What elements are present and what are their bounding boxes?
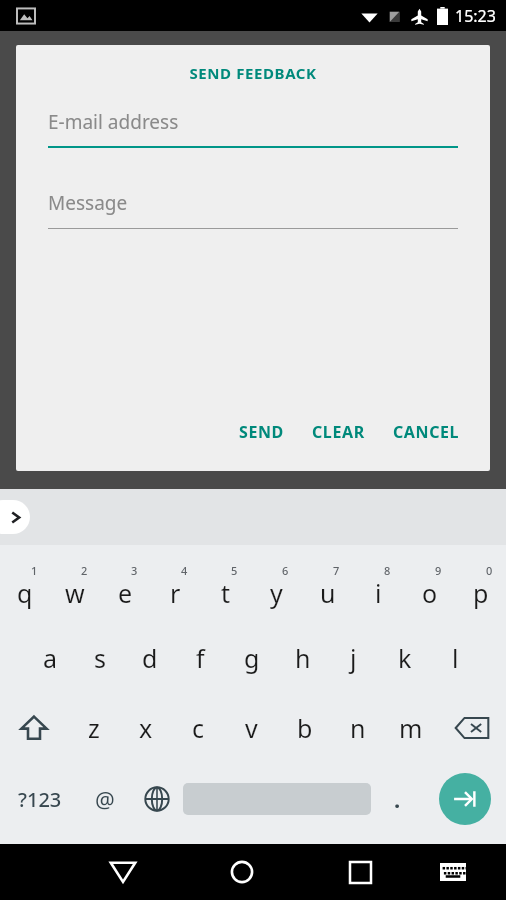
button[interactable]: b <box>278 693 331 763</box>
button[interactable]: v <box>225 693 278 763</box>
staticText: l <box>452 641 459 675</box>
button[interactable]: z <box>68 693 120 763</box>
staticText: @ <box>95 784 115 814</box>
button[interactable]: 9 <box>404 551 455 623</box>
button[interactable]: Change language <box>131 763 183 835</box>
staticText: 0 <box>486 563 493 578</box>
button[interactable]: h <box>277 623 328 693</box>
staticText: f <box>196 641 205 675</box>
staticText: p <box>473 576 489 610</box>
staticText: 5 <box>231 563 238 578</box>
staticText: c <box>192 711 205 745</box>
staticText: 9 <box>435 563 442 578</box>
staticText: SEND FEEDBACK <box>16 63 490 83</box>
staticText: w <box>65 576 85 610</box>
staticText: o <box>422 576 438 610</box>
staticText: r <box>170 576 181 610</box>
button[interactable]: Enter <box>423 763 506 835</box>
button[interactable]: s <box>75 623 125 693</box>
staticText: 15:23 <box>455 5 496 27</box>
staticText: 6 <box>282 563 289 578</box>
staticText: b <box>297 711 313 745</box>
button[interactable]: Home <box>203 844 280 900</box>
staticText: u <box>320 576 336 610</box>
staticText: s <box>94 641 106 675</box>
staticText: 7 <box>333 563 340 578</box>
button[interactable]: E-mail address <box>48 109 458 148</box>
staticText: y <box>270 576 283 610</box>
button[interactable]: Space <box>183 763 371 835</box>
staticText: 3 <box>131 563 138 578</box>
staticText: CANCEL <box>393 421 460 443</box>
button[interactable]: . <box>371 763 423 835</box>
button[interactable]: j <box>328 623 379 693</box>
staticText: n <box>350 711 366 745</box>
button[interactable]: k <box>379 623 430 693</box>
button[interactable]: ?123 <box>0 763 79 835</box>
button[interactable]: More suggestions <box>0 500 30 534</box>
button[interactable]: l <box>430 623 481 693</box>
staticText: m <box>399 711 423 745</box>
button[interactable]: @ <box>79 763 131 835</box>
staticText: i <box>375 576 382 610</box>
button[interactable]: m <box>384 693 437 763</box>
button[interactable]: 4 <box>150 551 200 623</box>
button[interactable]: 3 <box>100 551 150 623</box>
staticText: 8 <box>384 563 391 578</box>
staticText: 1 <box>31 563 38 578</box>
button[interactable]: a <box>25 623 75 693</box>
button[interactable]: x <box>120 693 172 763</box>
button[interactable]: Recents <box>322 844 399 900</box>
staticText: e <box>118 576 133 610</box>
staticText: SEND <box>239 421 284 443</box>
button[interactable]: 2 <box>50 551 100 623</box>
button[interactable]: f <box>175 623 226 693</box>
staticText: Message <box>48 190 128 216</box>
staticText: t <box>221 576 231 610</box>
button[interactable]: Backspace <box>437 693 506 763</box>
button[interactable]: 8 <box>353 551 404 623</box>
staticText: z <box>88 711 100 745</box>
staticText: 2 <box>81 563 88 578</box>
button[interactable]: 5 <box>200 551 251 623</box>
staticText: 4 <box>181 563 188 578</box>
staticText: a <box>43 641 58 675</box>
staticText: v <box>245 711 258 745</box>
button[interactable]: CANCEL <box>379 413 474 451</box>
button[interactable]: Switch keyboard <box>414 844 491 900</box>
staticText: E-mail address <box>48 109 179 135</box>
button[interactable]: SEND <box>225 413 298 451</box>
button[interactable]: 0 <box>455 551 506 623</box>
button[interactable]: Back <box>84 844 161 900</box>
staticText: x <box>139 711 153 745</box>
button[interactable]: CLEAR <box>298 413 379 451</box>
staticText: g <box>244 641 260 675</box>
button[interactable]: g <box>226 623 277 693</box>
button[interactable]: n <box>331 693 384 763</box>
staticText: d <box>142 641 158 675</box>
button[interactable]: 1 <box>0 551 50 623</box>
staticText: j <box>350 641 357 675</box>
button[interactable]: 6 <box>251 551 302 623</box>
staticText: ?123 <box>18 786 62 813</box>
button[interactable]: Message <box>48 190 458 229</box>
staticText: h <box>295 641 311 675</box>
button[interactable]: 7 <box>302 551 353 623</box>
staticText: q <box>17 576 33 610</box>
button[interactable]: Shift <box>0 693 68 763</box>
staticText: . <box>394 784 401 814</box>
staticText: CLEAR <box>312 421 365 443</box>
button[interactable]: c <box>172 693 225 763</box>
staticText: k <box>398 641 412 675</box>
button[interactable]: d <box>125 623 175 693</box>
